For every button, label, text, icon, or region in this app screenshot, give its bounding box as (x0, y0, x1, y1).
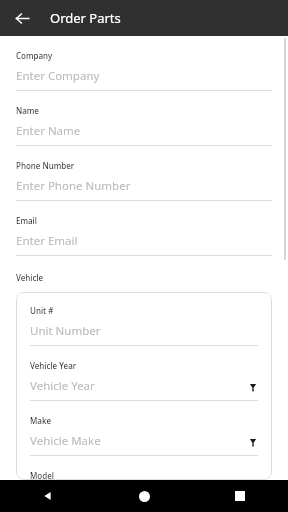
button[interactable]: Recent apps (192, 480, 288, 512)
staticText: Unit Number (30, 323, 101, 339)
button[interactable]: Name (16, 105, 272, 146)
staticText: Enter Email (16, 233, 78, 249)
staticText: Name (16, 105, 39, 116)
button[interactable]: Email (16, 215, 272, 256)
button[interactable]: Home (96, 480, 192, 512)
button[interactable]: Unit # (30, 305, 258, 346)
button[interactable]: Make (30, 415, 258, 456)
staticText: Enter Phone Number (16, 178, 131, 194)
staticText: Vehicle Make (30, 433, 101, 449)
button[interactable]: Company (16, 50, 272, 91)
button[interactable]: Back (8, 4, 36, 32)
staticText: Make (30, 415, 51, 426)
staticText: Company (16, 50, 53, 61)
button[interactable]: Model (30, 470, 258, 480)
staticText: Enter Company (16, 68, 100, 84)
button[interactable]: Back (0, 480, 96, 512)
staticText: Email (16, 215, 37, 226)
button[interactable]: Vehicle Year (30, 360, 258, 401)
staticText: Phone Number (16, 160, 75, 171)
staticText: Vehicle Year (30, 360, 77, 371)
staticText: Enter Name (16, 123, 81, 139)
staticText: Model (30, 470, 54, 480)
staticText: Vehicle Year (30, 378, 95, 394)
staticText: Order Parts (50, 9, 121, 27)
staticText: Vehicle (16, 272, 44, 283)
staticText: Unit # (30, 305, 54, 316)
button[interactable]: Phone Number (16, 160, 272, 201)
